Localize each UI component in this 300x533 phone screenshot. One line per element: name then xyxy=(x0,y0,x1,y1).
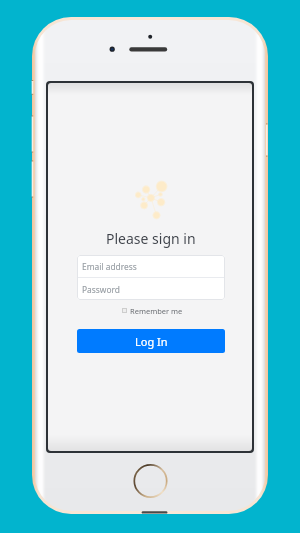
staticText: Remember me xyxy=(130,306,183,316)
staticText: Password xyxy=(82,284,120,295)
button[interactable]: Log In xyxy=(77,329,225,353)
button[interactable]: Email address xyxy=(77,255,225,277)
button[interactable]: Password xyxy=(77,278,225,300)
staticText: Log In xyxy=(135,334,168,349)
button[interactable]: Remember me xyxy=(121,305,181,315)
staticText: Please sign in xyxy=(106,229,196,248)
staticText: Email address xyxy=(82,261,137,272)
